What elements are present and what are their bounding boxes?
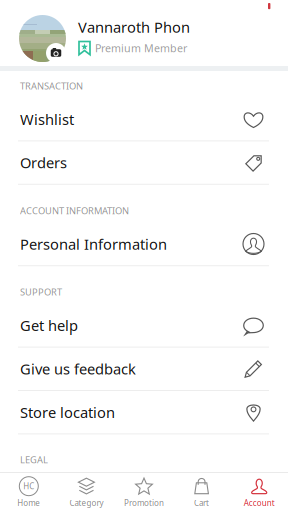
- button[interactable]: Wishlist: [0, 98, 288, 141]
- staticText: LEGAL: [20, 453, 48, 466]
- staticText: HC: [23, 481, 34, 491]
- button[interactable]: Account: [230, 473, 288, 512]
- button[interactable]: Give us feedback: [0, 348, 288, 391]
- staticText: Give us feedback: [20, 359, 136, 379]
- button[interactable]: Personal Information: [0, 223, 288, 266]
- staticText: Cart: [194, 498, 209, 508]
- button[interactable]: Orders: [0, 141, 288, 185]
- staticText: Premium Member: [95, 41, 187, 55]
- staticText: TRANSACTION: [20, 80, 83, 92]
- button[interactable]: Category: [58, 473, 115, 512]
- staticText: Personal Information: [20, 234, 167, 254]
- staticText: Orders: [20, 153, 67, 172]
- staticText: ACCOUNT INFORMATION: [20, 204, 129, 217]
- staticText: Get help: [20, 316, 78, 335]
- button[interactable]: HC: [0, 473, 58, 512]
- button[interactable]: Get help: [0, 304, 288, 348]
- staticText: Vannaroth Phon: [78, 17, 190, 37]
- staticText: SUPPORT: [20, 286, 62, 298]
- staticText: Category: [69, 498, 103, 508]
- staticText: Wishlist: [20, 109, 74, 129]
- staticText: Promotion: [124, 498, 164, 508]
- staticText: Store location: [20, 402, 115, 422]
- button[interactable]: Promotion: [115, 473, 173, 512]
- staticText: Home: [17, 498, 40, 508]
- button[interactable]: Store location: [0, 391, 288, 434]
- button[interactable]: Cart: [173, 473, 230, 512]
- staticText: Account: [244, 498, 275, 508]
